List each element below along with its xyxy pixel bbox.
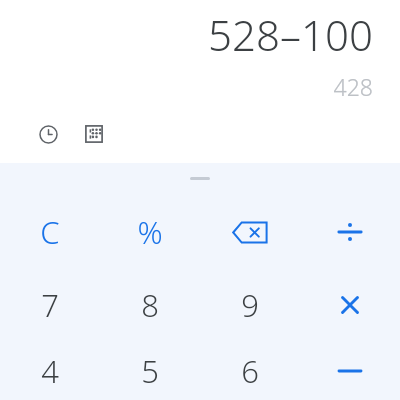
staticText: 5 [141, 350, 159, 392]
button[interactable]: Percent [100, 195, 200, 269]
staticText: 9 [241, 284, 259, 326]
button[interactable]: 5 [100, 341, 200, 400]
staticText: % [137, 211, 163, 253]
button[interactable]: History [30, 116, 66, 152]
button[interactable]: 7 [0, 269, 100, 341]
staticText: 7 [41, 284, 59, 326]
button[interactable]: 9 [200, 269, 300, 341]
button[interactable]: Backspace [200, 195, 300, 269]
staticText: 4 [41, 350, 59, 392]
button[interactable]: 8 [100, 269, 200, 341]
button[interactable]: Minus [300, 341, 400, 400]
staticText: 528–100 [208, 6, 373, 63]
staticText: C [40, 211, 60, 253]
button[interactable]: Scientific keypad [76, 116, 112, 152]
button[interactable]: Divide [300, 195, 400, 269]
staticText: 428 [333, 71, 373, 102]
button[interactable]: Multiply [300, 269, 400, 341]
staticText: 8 [141, 284, 159, 326]
staticText: 6 [241, 350, 259, 392]
button[interactable]: Clear [0, 195, 100, 269]
button[interactable]: 6 [200, 341, 300, 400]
button[interactable]: 4 [0, 341, 100, 400]
